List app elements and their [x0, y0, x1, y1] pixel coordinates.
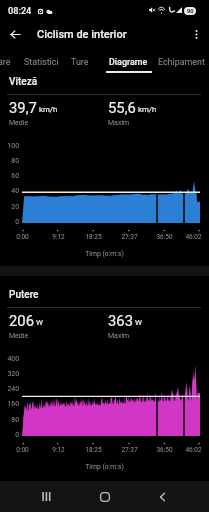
staticText: W	[135, 318, 142, 327]
button[interactable]: Back	[2, 21, 28, 47]
staticText: 39,7	[9, 99, 37, 116]
staticText: Viteză	[9, 76, 38, 88]
staticText: 18:25	[85, 446, 102, 454]
staticText: 08:24	[8, 5, 32, 16]
staticText: 80	[11, 416, 19, 424]
staticText: Ciclism de interior	[37, 28, 127, 41]
staticText: 36:50	[156, 446, 173, 454]
staticText: 20	[11, 203, 19, 211]
staticText: Statistici	[24, 57, 59, 67]
staticText: 36:50	[156, 233, 173, 241]
staticText: Diagrame	[109, 57, 148, 67]
staticText: are	[0, 57, 11, 67]
button[interactable]: More options	[183, 21, 209, 47]
staticText: 27:37	[121, 233, 138, 241]
staticText: 9:12	[52, 446, 65, 454]
button[interactable]: Back	[144, 481, 180, 512]
staticText: 160	[7, 400, 19, 408]
button[interactable]: Diagrame	[101, 48, 156, 74]
staticText: 27:37	[121, 446, 138, 454]
staticText: Timp (o:m:s)	[85, 463, 124, 471]
staticText: 40	[11, 187, 19, 195]
button[interactable]: Ture	[67, 48, 93, 74]
staticText: 90	[187, 8, 194, 15]
staticText: 46:02	[185, 446, 202, 454]
staticText: km/h	[138, 105, 157, 114]
staticText: 9:12	[52, 233, 65, 241]
button[interactable]: Statistici	[18, 48, 65, 74]
staticText: Maxim	[108, 332, 130, 340]
staticText: km/h	[39, 105, 58, 114]
staticText: 0:00	[16, 446, 29, 454]
staticText: 18:25	[85, 233, 102, 241]
button[interactable]: Home	[87, 481, 123, 512]
staticText: Maxim	[108, 119, 130, 127]
staticText: Timp (o:m:s)	[85, 250, 124, 258]
staticText: 60	[11, 172, 19, 180]
staticText: 100	[7, 142, 19, 150]
staticText: 320	[7, 370, 19, 378]
staticText: W	[36, 318, 43, 327]
button[interactable]: Recent apps	[28, 481, 64, 512]
staticText: Medie	[9, 332, 29, 340]
staticText: Echipament	[158, 57, 205, 67]
staticText: Putere	[9, 289, 39, 301]
staticText: Medie	[9, 119, 29, 127]
staticText: 80	[11, 157, 19, 165]
staticText: 0	[15, 218, 19, 226]
staticText: 400	[7, 355, 19, 363]
staticText: 363	[108, 312, 133, 329]
button[interactable]: are	[0, 48, 14, 74]
staticText: 206	[9, 312, 34, 329]
staticText: 240	[7, 385, 19, 393]
staticText: Ture	[71, 57, 89, 67]
staticText: 0	[15, 431, 19, 439]
button[interactable]: Echipament	[152, 48, 209, 74]
staticText: 46:02	[185, 233, 202, 241]
staticText: 0:00	[16, 233, 29, 241]
staticText: 55,6	[108, 99, 136, 116]
